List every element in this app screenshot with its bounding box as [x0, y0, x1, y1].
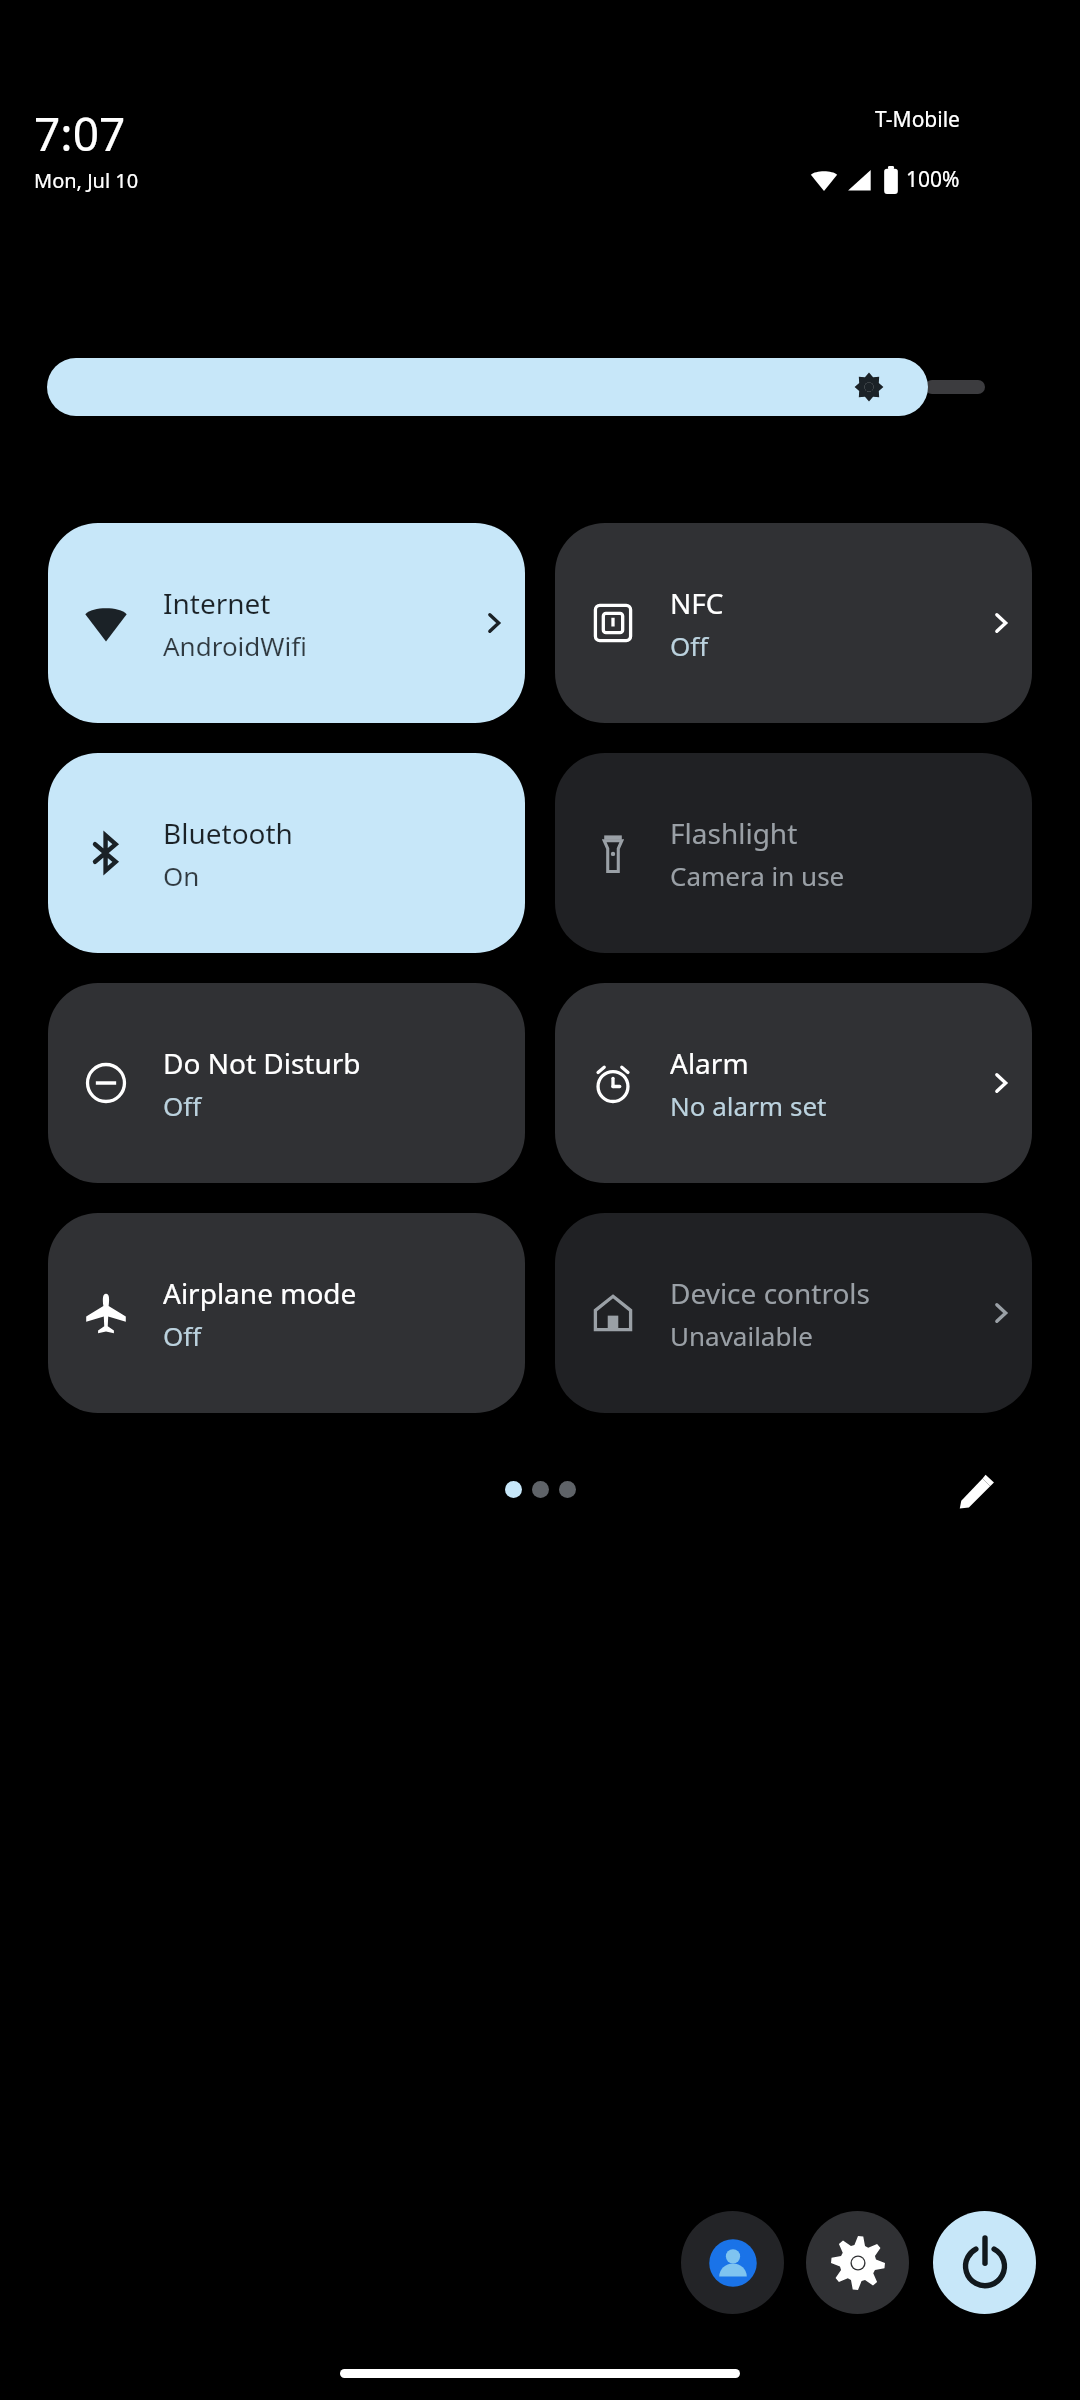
staticText: T-Mobile — [875, 105, 960, 134]
button[interactable]: Flashlight — [555, 753, 1032, 953]
button[interactable]: Airplane mode — [48, 1213, 525, 1413]
button[interactable]: Device controls — [555, 1213, 1032, 1413]
button[interactable]: Do Not Disturb — [48, 983, 525, 1183]
staticText: Unavailable — [670, 1318, 813, 1353]
staticText: Mon, Jul 10 — [34, 167, 139, 194]
button[interactable]: Alarm — [555, 983, 1032, 1183]
staticText: Camera in use — [670, 858, 845, 893]
button[interactable]: User — [681, 2211, 784, 2314]
staticText: Airplane mode — [163, 1274, 357, 1312]
staticText: Off — [163, 1088, 202, 1123]
staticText: Alarm — [670, 1044, 749, 1082]
staticText: Off — [163, 1318, 202, 1353]
staticText: NFC — [670, 584, 724, 622]
staticText: On — [163, 858, 200, 893]
staticText: Internet — [163, 584, 271, 622]
button[interactable]: Edit tiles — [938, 1450, 1018, 1530]
button[interactable]: NFC — [555, 523, 1032, 723]
staticText: Bluetooth — [163, 814, 293, 852]
button[interactable]: Power — [933, 2211, 1036, 2314]
staticText: Off — [670, 628, 709, 663]
staticText: Flashlight — [670, 814, 798, 852]
staticText: No alarm set — [670, 1088, 827, 1123]
staticText: Do Not Disturb — [163, 1044, 361, 1082]
staticText: Device controls — [670, 1274, 871, 1312]
staticText: 7:07 — [34, 102, 126, 165]
button[interactable]: Settings — [806, 2211, 909, 2314]
staticText: AndroidWifi — [163, 628, 307, 663]
staticText: 100% — [906, 165, 960, 194]
button[interactable]: Internet — [48, 523, 525, 723]
button[interactable] — [47, 358, 985, 416]
button[interactable]: Bluetooth — [48, 753, 525, 953]
